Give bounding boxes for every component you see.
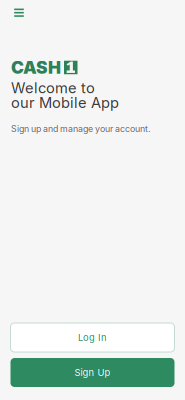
- staticText: Sign Up: [74, 367, 110, 378]
- staticText: CASH: [11, 57, 61, 78]
- staticText: Log In: [78, 332, 107, 343]
- button[interactable]: Sign Up: [10, 358, 174, 387]
- staticText: Welcome to: [11, 79, 95, 97]
- button[interactable]: Menu: [6, 0, 32, 26]
- button[interactable]: Log In: [10, 323, 174, 352]
- staticText: Sign up and manage your account.: [11, 123, 151, 134]
- staticText: our Mobile App: [11, 94, 119, 111]
